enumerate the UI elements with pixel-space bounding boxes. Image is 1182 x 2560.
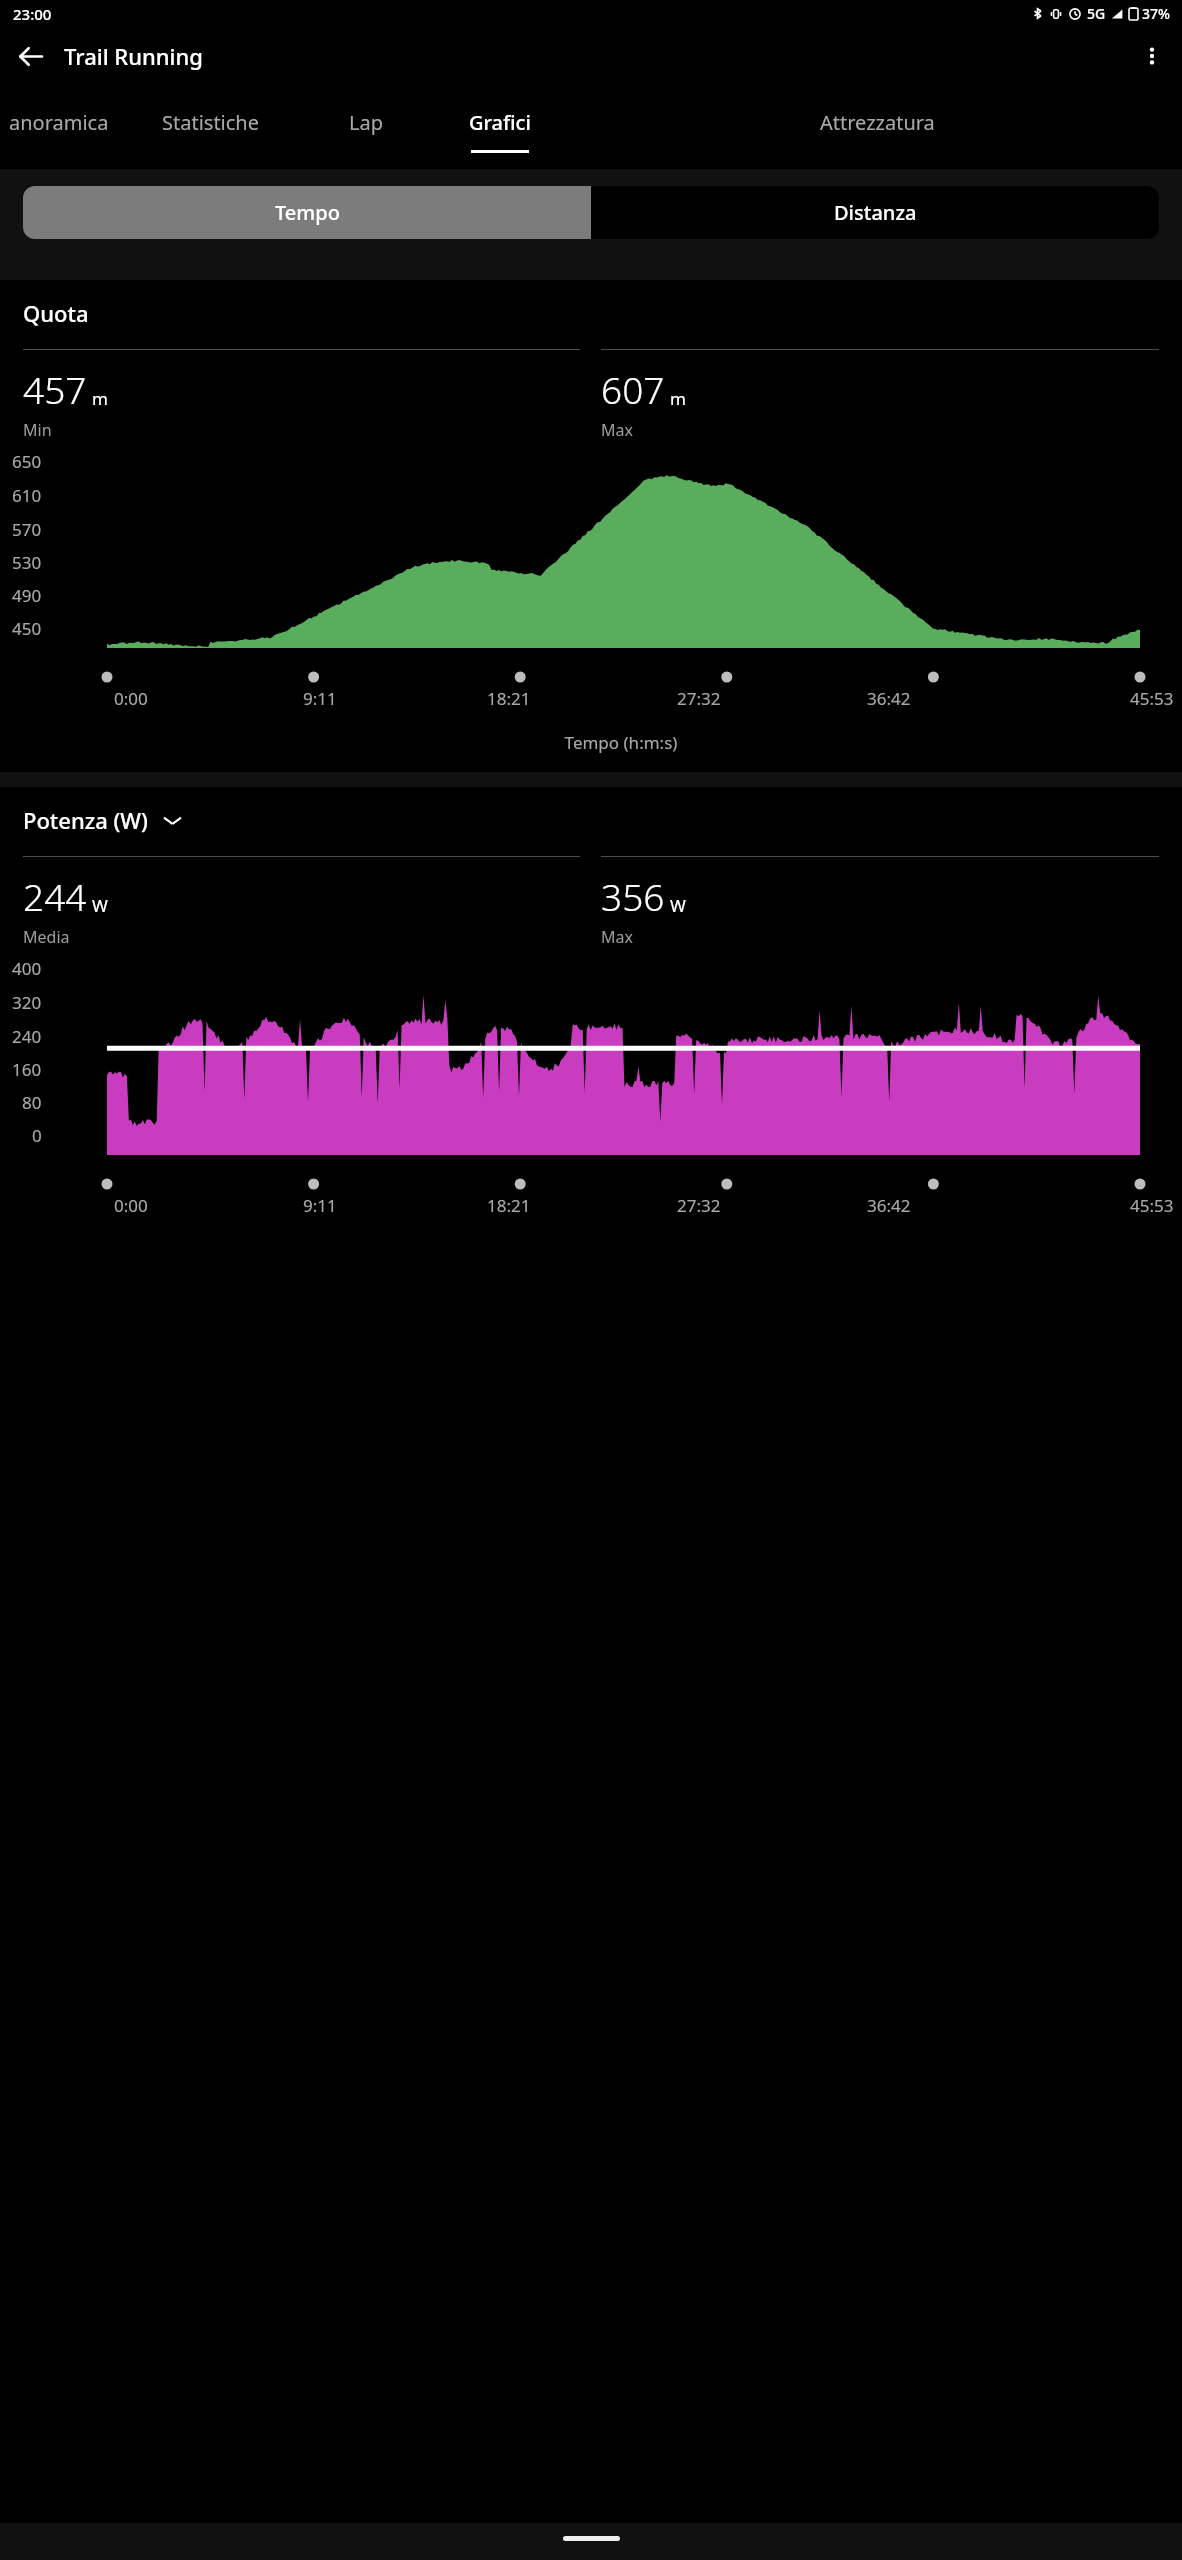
staticText: 0:00 (114, 1194, 148, 1217)
staticText: 0:00 (114, 687, 148, 710)
staticText: Grafici (469, 109, 531, 136)
staticText: m (92, 387, 108, 410)
button[interactable]: Grafici (428, 84, 572, 169)
staticText: 240 (12, 1025, 42, 1048)
staticText: Distanza (834, 199, 917, 226)
staticText: 356 (601, 871, 665, 921)
staticText: Min (23, 419, 52, 441)
staticText: 37% (1142, 4, 1170, 23)
button[interactable]: anoramica (0, 84, 118, 169)
staticText: 5G (1087, 4, 1106, 23)
staticText: W (92, 894, 108, 917)
staticText: 244 (23, 871, 87, 921)
staticText: 45:53 (1130, 687, 1174, 710)
staticText: 80 (22, 1091, 42, 1114)
staticText: 607 (601, 364, 665, 414)
staticText: 23:00 (13, 4, 52, 24)
staticText: 45:53 (1130, 1194, 1174, 1217)
staticText: anoramica (9, 109, 109, 136)
staticText: 36:42 (867, 687, 911, 710)
button[interactable]: Tempo (23, 186, 591, 239)
button[interactable]: Distanza (591, 186, 1159, 239)
staticText: 0 (32, 1124, 42, 1147)
staticText: 650 (12, 450, 42, 473)
staticText: W (670, 894, 686, 917)
staticText: 530 (12, 551, 42, 574)
button[interactable]: Potenza (W) (23, 805, 181, 835)
staticText: 490 (12, 584, 42, 607)
staticText: 36:42 (867, 1194, 911, 1217)
button[interactable]: Lap (303, 84, 428, 169)
staticText: Media (23, 926, 70, 948)
staticText: 610 (12, 484, 42, 507)
staticText: Lap (349, 109, 383, 136)
staticText: Statistiche (162, 109, 259, 136)
staticText: 570 (12, 518, 42, 541)
staticText: 450 (12, 617, 42, 640)
staticText: 18:21 (487, 1194, 531, 1217)
staticText: Trail Running (64, 41, 203, 71)
staticText: Max (601, 419, 633, 441)
staticText: Max (601, 926, 633, 948)
staticText: m (670, 387, 686, 410)
staticText: 27:32 (677, 1194, 721, 1217)
staticText: 9:11 (303, 1194, 337, 1217)
staticText: 18:21 (487, 687, 531, 710)
staticText: 457 (23, 364, 87, 414)
button[interactable]: More options (1128, 32, 1176, 80)
staticText: 9:11 (303, 687, 337, 710)
staticText: Tempo (275, 199, 340, 226)
staticText: Potenza (W) (23, 805, 148, 835)
staticText: 160 (12, 1058, 42, 1081)
button[interactable]: Attrezzatura (572, 84, 1182, 169)
staticText: 320 (12, 991, 42, 1014)
staticText: 400 (12, 957, 42, 980)
button[interactable]: Statistiche (118, 84, 303, 169)
staticText: Attrezzatura (820, 109, 935, 136)
staticText: Tempo (h:m:s) (60, 731, 1182, 754)
button[interactable]: Back (6, 32, 54, 80)
staticText: 27:32 (677, 687, 721, 710)
staticText: Quota (23, 298, 89, 328)
